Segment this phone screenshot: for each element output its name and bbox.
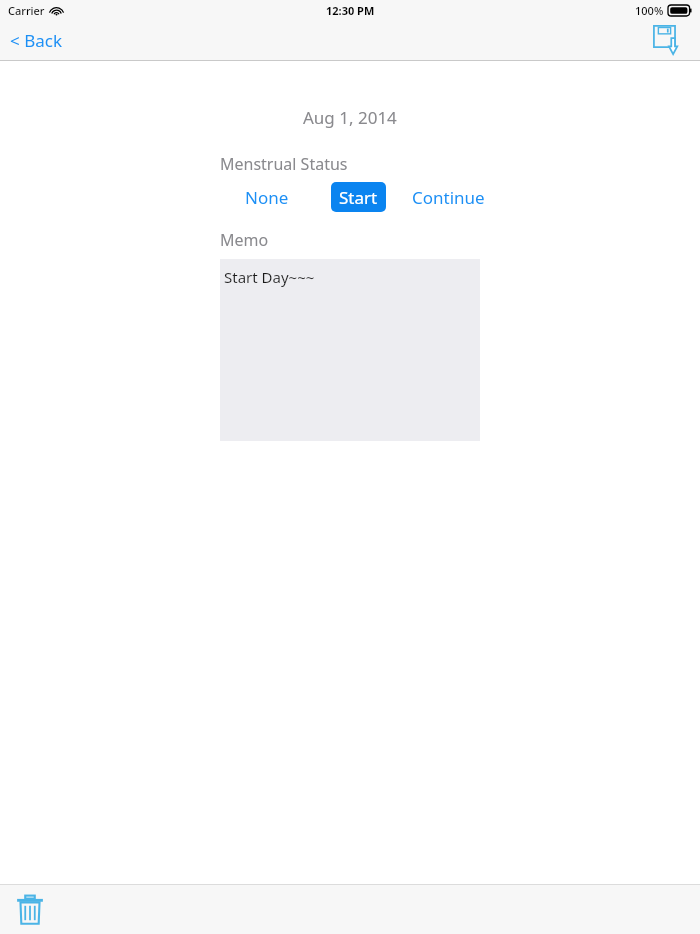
staticText: Menstrual Status <box>220 153 348 175</box>
button[interactable]: < Back <box>0 23 76 58</box>
button[interactable]: Start <box>331 182 386 212</box>
button[interactable]: Continue <box>401 182 496 212</box>
staticText: < Back <box>10 29 62 52</box>
staticText: Continue <box>412 186 485 208</box>
staticText: Memo <box>220 229 269 251</box>
button[interactable]: Save <box>648 20 692 60</box>
staticText: 12:30 PM <box>326 3 375 18</box>
staticText: Start Day~~~ <box>224 267 315 287</box>
button[interactable]: None <box>234 182 300 212</box>
staticText: None <box>245 186 289 208</box>
staticText: Carrier <box>8 3 45 18</box>
staticText: 100% <box>635 3 664 18</box>
staticText: Start <box>339 186 378 208</box>
button[interactable]: Delete <box>12 891 48 929</box>
button[interactable]: Start Day~~~ <box>220 259 480 441</box>
staticText: Aug 1, 2014 <box>303 106 397 129</box>
